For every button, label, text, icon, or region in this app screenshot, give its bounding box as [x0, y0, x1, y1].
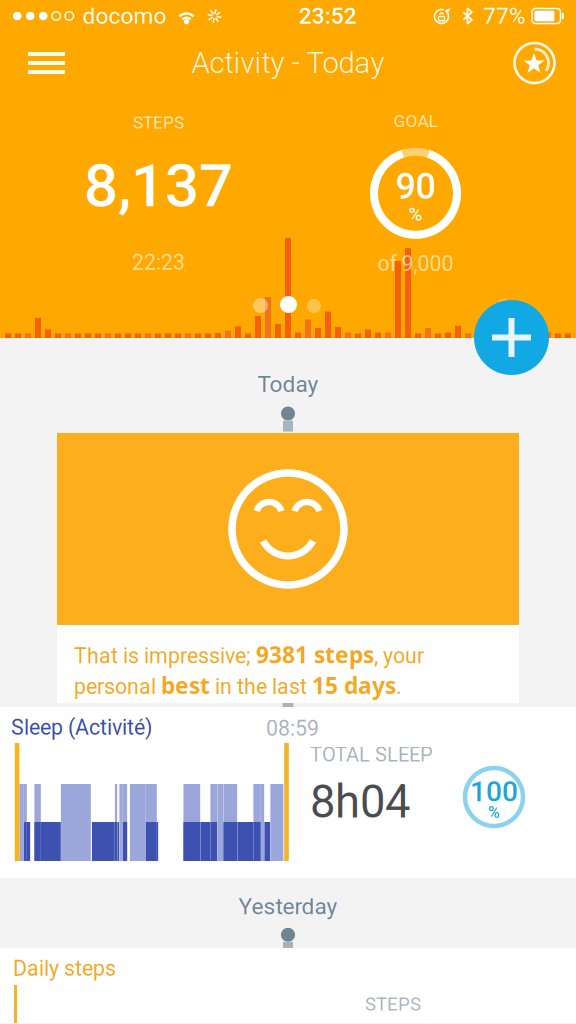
staticText: That is impressive; 9381 steps, your per… — [74, 639, 424, 701]
staticText: 90 — [395, 165, 435, 207]
staticText: docomo — [82, 3, 166, 29]
button[interactable]: That is impressive; 9381 steps, your per… — [57, 433, 519, 703]
staticText: GOAL — [393, 111, 437, 131]
button[interactable]: Achievements — [492, 32, 576, 93]
staticText: TOTAL SLEEP — [310, 743, 433, 766]
staticText: Daily steps — [13, 956, 116, 981]
staticText: % — [488, 803, 500, 822]
staticText: Activity - Today — [191, 46, 384, 80]
staticText: % — [408, 203, 422, 225]
staticText: 8h04 — [310, 775, 410, 828]
staticText: 100 — [470, 775, 518, 808]
staticText: Today — [257, 371, 318, 398]
button[interactable]: Add activity — [474, 300, 549, 375]
staticText: STEPS — [365, 993, 421, 1015]
staticText: 23:52 — [299, 3, 357, 29]
staticText: STEPS — [133, 112, 184, 133]
staticText: of 9,000 — [377, 251, 453, 276]
button[interactable]: Menu — [0, 32, 85, 94]
staticText: 8,137 — [84, 151, 233, 221]
staticText: 08:59 — [266, 716, 319, 741]
staticText: 77% — [483, 3, 526, 29]
staticText: 22:23 — [132, 250, 185, 275]
staticText: Sleep (Activité) — [11, 715, 152, 740]
staticText: Yesterday — [238, 893, 337, 920]
button[interactable]: Sleep (Activité) — [0, 707, 576, 878]
